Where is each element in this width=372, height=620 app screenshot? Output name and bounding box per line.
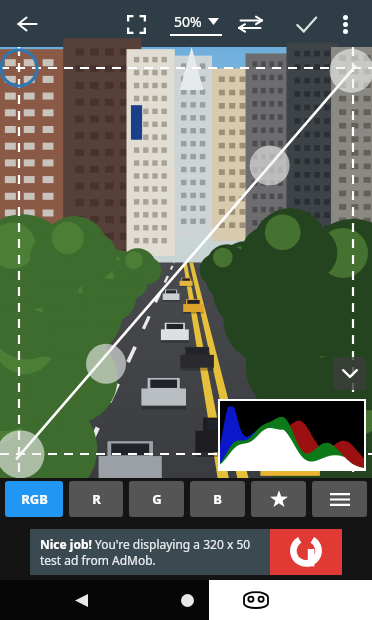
staticText: Nice job! You're displaying a 320 x 50 t… [40, 536, 270, 568]
button[interactable]: Collapse panel [333, 357, 366, 390]
button[interactable]: Home [168, 581, 206, 619]
button[interactable]: Compare [228, 2, 272, 46]
button[interactable]: Fit to screen [114, 2, 158, 46]
button[interactable]: Menu [312, 481, 367, 517]
button[interactable]: More options [323, 2, 367, 46]
button[interactable]: RGB [5, 481, 63, 517]
staticText: R [92, 490, 101, 508]
staticText: G [152, 490, 162, 508]
button[interactable]: Favorites [251, 481, 306, 517]
button[interactable]: Advertisement [30, 529, 342, 575]
button[interactable]: B [190, 481, 245, 517]
button[interactable]: Apply [284, 2, 328, 46]
button[interactable]: Histogram [220, 401, 364, 469]
button[interactable]: Back [4, 1, 50, 47]
staticText: B [213, 490, 222, 508]
button[interactable]: Back [62, 581, 100, 619]
button[interactable]: 50% [163, 3, 229, 45]
staticText: 50% [174, 12, 202, 31]
button[interactable]: G [129, 481, 184, 517]
button[interactable]: R [69, 481, 123, 517]
staticText: RGB [21, 490, 48, 508]
